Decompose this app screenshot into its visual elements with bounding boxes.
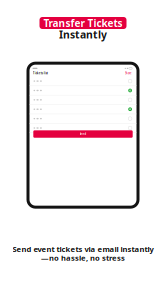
staticText: —no hassle, no stress bbox=[41, 253, 125, 263]
button[interactable] bbox=[29, 124, 136, 133]
button[interactable] bbox=[29, 114, 136, 124]
button[interactable]: Send bbox=[33, 130, 133, 138]
staticText: Send event tickets via email instantly bbox=[12, 244, 153, 254]
staticText: Share bbox=[125, 71, 132, 75]
button[interactable]: Share bbox=[125, 71, 132, 75]
staticText: Tickets list bbox=[33, 71, 48, 75]
button[interactable] bbox=[29, 105, 136, 114]
button[interactable] bbox=[29, 95, 136, 105]
button[interactable] bbox=[29, 77, 136, 86]
staticText: Transfer Tickets bbox=[43, 16, 122, 30]
staticText: Send bbox=[79, 132, 86, 136]
staticText: Instantly bbox=[59, 27, 107, 42]
button[interactable] bbox=[29, 86, 136, 95]
